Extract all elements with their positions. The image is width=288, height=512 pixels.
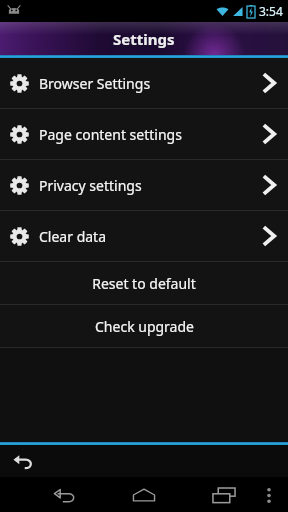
- staticText: Settings: [113, 29, 175, 49]
- staticText: Reset to default: [92, 274, 196, 293]
- staticText: Browser Settings: [39, 74, 151, 93]
- button[interactable]: More options: [256, 480, 282, 510]
- staticText: Clear data: [39, 227, 107, 246]
- button[interactable]: Reset to default: [0, 262, 288, 304]
- button[interactable]: Page content settings: [0, 109, 288, 159]
- button[interactable]: Recents: [204, 480, 244, 510]
- staticText: Privacy settings: [39, 176, 142, 195]
- staticText: 3:54: [259, 3, 283, 19]
- button[interactable]: Back: [46, 480, 84, 510]
- staticText: Page content settings: [39, 125, 182, 144]
- button[interactable]: Back: [8, 446, 38, 476]
- button[interactable]: Clear data: [0, 211, 288, 261]
- button[interactable]: Browser Settings: [0, 58, 288, 108]
- button[interactable]: Home: [124, 480, 164, 510]
- staticText: Check upgrade: [95, 317, 194, 336]
- button[interactable]: Check upgrade: [0, 305, 288, 347]
- button[interactable]: Privacy settings: [0, 160, 288, 210]
